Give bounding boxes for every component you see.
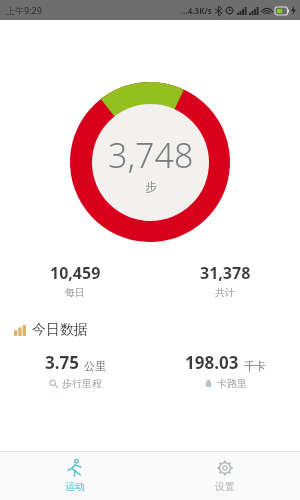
staticText: 设置 (215, 480, 235, 493)
staticText: 3,748 (108, 132, 194, 178)
button[interactable]: 3.75 (0, 351, 150, 390)
staticText: 共计 (215, 286, 235, 299)
staticText: 31,378 (200, 262, 251, 284)
button[interactable]: 10,459 (0, 260, 150, 301)
staticText: 运动 (65, 480, 85, 493)
staticText: 3.75 (45, 351, 79, 374)
button[interactable]: 198.03 (150, 351, 300, 390)
staticText: ...4.3K/s (181, 5, 212, 16)
staticText: 198.03 (185, 351, 239, 374)
staticText: 10,459 (50, 262, 101, 284)
button[interactable]: 31,378 (150, 260, 300, 301)
button[interactable]: 运动 (0, 452, 150, 500)
staticText: 每日 (65, 286, 85, 299)
staticText: 卡路里 (217, 377, 247, 390)
button[interactable]: 设置 (150, 452, 300, 500)
staticText: 公里 (84, 359, 106, 373)
staticText: 今日数据 (32, 321, 88, 339)
staticText: 步 (145, 179, 157, 194)
staticText: 千卡 (244, 359, 266, 373)
staticText: 步行里程 (62, 377, 102, 390)
staticText: 上午9:29 (6, 4, 42, 16)
